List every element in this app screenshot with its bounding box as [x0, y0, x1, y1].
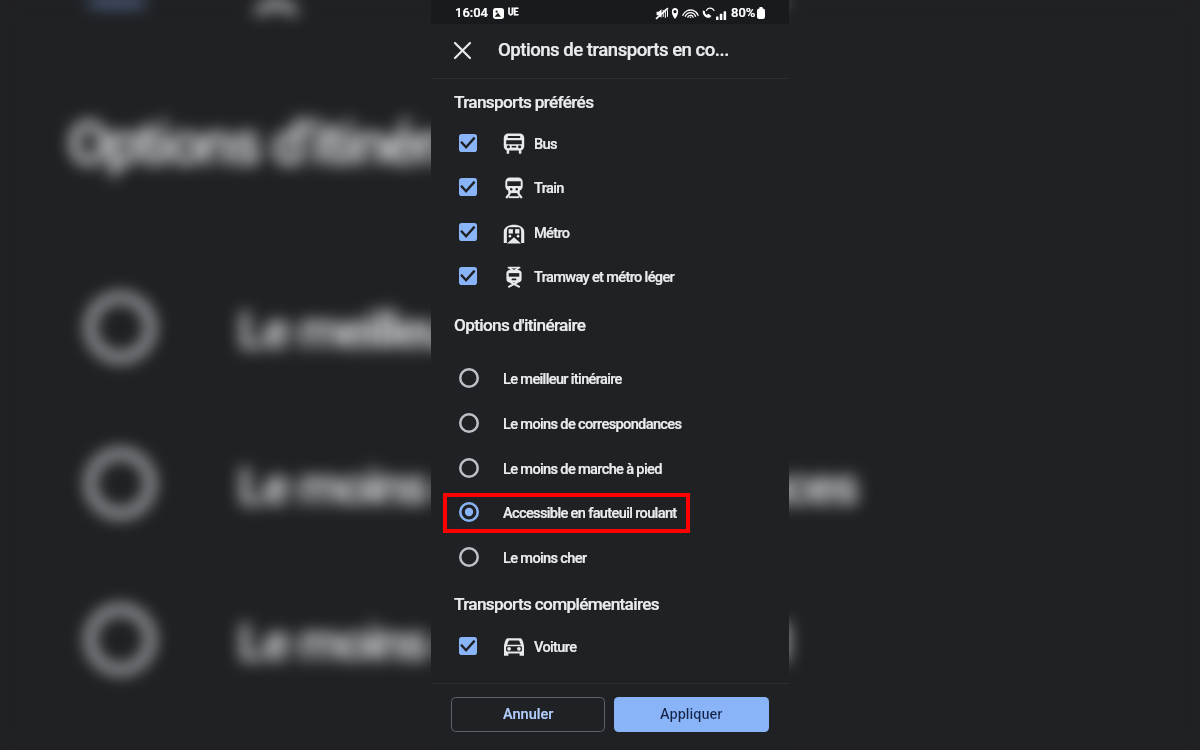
- button[interactable]: Annuler: [451, 697, 605, 732]
- staticText: Options d'itinéraire: [68, 109, 526, 178]
- staticText: Le moins de correspondances: [503, 415, 682, 432]
- staticText: 80%: [731, 5, 756, 20]
- button[interactable]: Le meilleur itinéraire: [431, 356, 789, 401]
- button[interactable]: Tramway et métro léger: [431, 254, 789, 299]
- button[interactable]: Accessible en fauteuil roulant: [0, 716, 1200, 750]
- button[interactable]: Train: [431, 165, 789, 210]
- button[interactable]: Le moins de marche à pied: [0, 563, 1200, 719]
- button[interactable]: Fermer: [445, 33, 479, 67]
- staticText: Le meilleur itinéraire: [238, 300, 651, 359]
- staticText: UE: [508, 7, 519, 17]
- staticText: Accessible en fauteuil roulant: [503, 504, 677, 521]
- staticText: Transports préférés: [454, 92, 594, 112]
- button[interactable]: Le moins cher: [431, 535, 789, 580]
- staticText: Bus: [534, 135, 557, 152]
- button[interactable]: Le moins de correspondances: [431, 401, 789, 446]
- staticText: Appliquer: [660, 706, 723, 723]
- staticText: Train: [534, 179, 564, 196]
- staticText: Le meilleur itinéraire: [503, 370, 622, 387]
- staticText: Options d'itinéraire: [454, 315, 586, 335]
- button[interactable]: Le moins de correspondances: [0, 407, 1200, 563]
- staticText: Annuler: [503, 706, 554, 723]
- staticText: Tramway et métro léger: [534, 268, 675, 285]
- button[interactable]: Appliquer: [614, 697, 769, 732]
- staticText: Transports complémentaires: [454, 594, 659, 614]
- staticText: Le moins de marche à pied: [503, 460, 662, 477]
- staticText: 16:04: [455, 5, 488, 20]
- button[interactable]: Voiture: [431, 624, 789, 669]
- button[interactable]: Accessible en fauteuil roulant: [431, 490, 789, 535]
- staticText: Le moins de correspondances: [238, 456, 859, 515]
- button[interactable]: Bus: [431, 121, 789, 166]
- button[interactable]: Le meilleur itinéraire: [0, 251, 1200, 407]
- button[interactable]: Métro: [431, 210, 789, 255]
- button[interactable]: Tramway et métro léger: [0, 0, 1200, 53]
- staticText: Voiture: [534, 638, 577, 655]
- staticText: Le moins de marche à pied: [238, 612, 790, 671]
- staticText: Métro: [534, 224, 570, 241]
- staticText: Tramway et métro léger: [346, 0, 835, 5]
- staticText: Options de transports en co...: [498, 39, 729, 61]
- staticText: Le moins cher: [503, 549, 587, 566]
- button[interactable]: Le moins de marche à pied: [431, 446, 789, 491]
